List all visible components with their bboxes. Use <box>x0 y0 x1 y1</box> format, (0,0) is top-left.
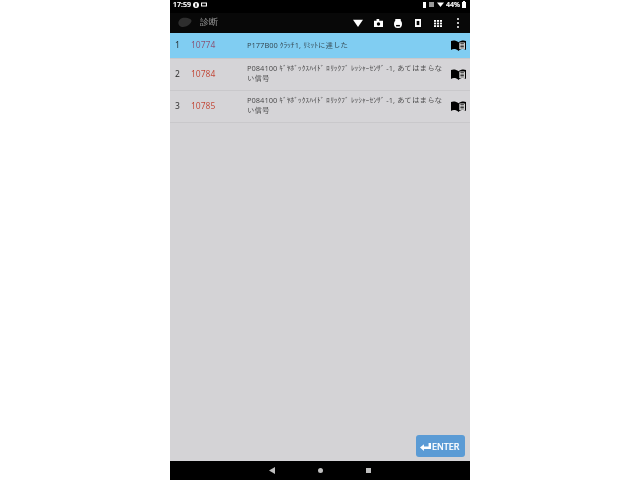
staticText: 10784 <box>191 68 216 80</box>
button[interactable]: Home <box>296 461 344 480</box>
staticText: 診断 <box>200 16 218 27</box>
button[interactable]: Back <box>248 461 296 480</box>
button[interactable]: Keypad <box>428 13 448 33</box>
button[interactable]: Open manual <box>447 59 470 90</box>
staticText: 17:59 <box>173 0 191 9</box>
button[interactable]: Wifi <box>348 13 368 33</box>
button[interactable]: Save <box>408 13 428 33</box>
button[interactable]: Camera <box>368 13 388 33</box>
staticText: 10785 <box>191 100 216 112</box>
button[interactable]: 3 <box>170 91 470 122</box>
button[interactable]: More options <box>448 13 468 33</box>
staticText: P177B00 ｸﾗｯﾁ1, ﾘﾐｯﾄに達した <box>247 40 349 50</box>
button[interactable]: Print <box>388 13 408 33</box>
staticText: 2 <box>175 68 180 80</box>
staticText: P084100 ｷﾞﾔﾎﾞｯｸｽﾊｲﾄﾞ ﾛﾘｯｸﾌﾞ ﾚｯｼｬｰｾﾝｻﾞ -1… <box>247 63 447 82</box>
button[interactable]: 1 <box>170 33 470 58</box>
button[interactable]: ENTER <box>416 435 465 457</box>
staticText: ENTER <box>432 440 460 452</box>
staticText: 1 <box>175 39 180 51</box>
button[interactable]: Open manual <box>447 91 470 122</box>
staticText: P084100 ｷﾞﾔﾎﾞｯｸｽﾊｲﾄﾞ ﾛﾘｯｸﾌﾞ ﾚｯｼｬｰｾﾝｻﾞ -1… <box>247 95 447 114</box>
staticText: 44% <box>446 0 460 9</box>
button[interactable]: Recent apps <box>344 461 392 480</box>
button[interactable]: Open manual <box>447 33 470 58</box>
staticText: 3 <box>175 100 180 112</box>
staticText: 10774 <box>191 39 216 51</box>
button[interactable]: 2 <box>170 59 470 90</box>
